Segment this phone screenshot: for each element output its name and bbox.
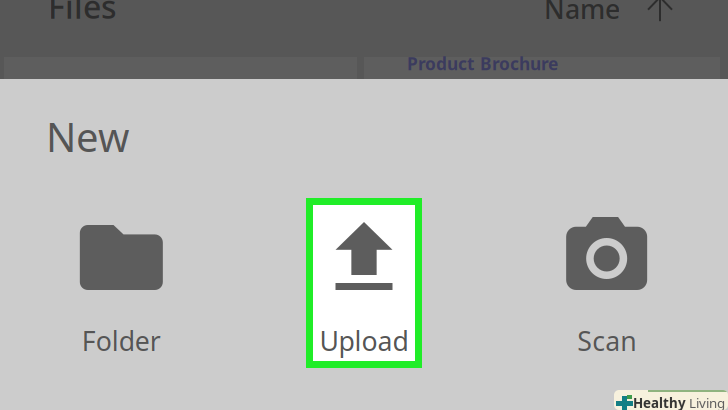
staticText: Product Brochure [407,52,558,75]
button[interactable]: Upload [306,198,422,368]
button[interactable]: Name [544,0,673,26]
button[interactable]: Folder [63,198,179,368]
staticText: Folder [82,323,161,358]
staticText: Files [48,0,117,27]
staticText: Scan [577,323,636,358]
staticText: New [46,110,129,163]
staticText: Living [689,394,725,410]
staticText: Healthy [633,394,686,410]
staticText: Name [544,0,620,26]
button[interactable]: Scan [549,198,665,368]
staticText: Upload [319,323,408,358]
